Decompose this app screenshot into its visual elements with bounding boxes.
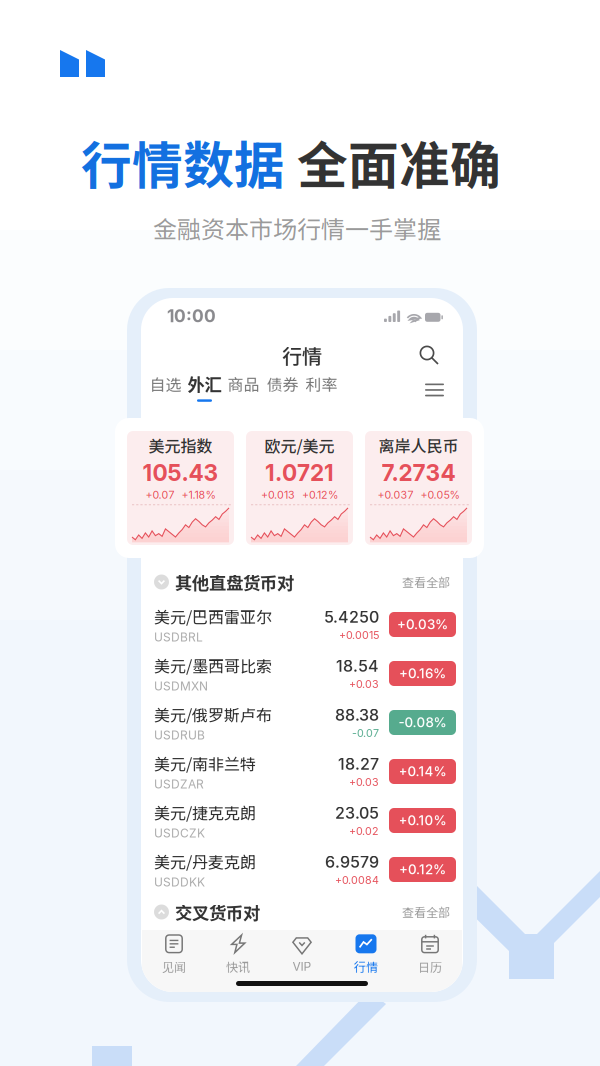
staticText: +0.013 [261, 488, 295, 501]
button[interactable]: 欧元/美元 [246, 431, 353, 545]
staticText: 美元/捷克克朗 [154, 801, 256, 824]
staticText: 6.9579 [325, 852, 379, 872]
staticText: 5.4250 [324, 607, 379, 627]
staticText: 查看全部 [402, 573, 450, 591]
staticText: +0.14% [398, 763, 446, 779]
staticText: 美元/俄罗斯卢布 [154, 703, 272, 726]
staticText: USDMXN [154, 679, 208, 693]
staticText: 美元/墨西哥比索 [154, 654, 272, 677]
staticText: 商品 [227, 372, 259, 395]
staticText: 其他直盘货币对 [175, 569, 294, 595]
button[interactable]: 见闻 [142, 932, 206, 976]
staticText: +0.037 [377, 488, 413, 501]
staticText: 88.38 [335, 705, 379, 725]
staticText: 行情 [354, 958, 378, 975]
button[interactable]: 美元/丹麦克朗 [141, 845, 463, 894]
staticText: 金融资本市场行情一手掌握 [153, 210, 441, 245]
staticText: 日历 [418, 958, 442, 975]
button[interactable]: 离岸人民币 [365, 431, 472, 545]
staticText: +0.0084 [335, 874, 379, 887]
button[interactable]: 美元/俄罗斯卢布 [141, 698, 463, 747]
staticText: 行情数据 [81, 125, 285, 198]
staticText: 23.05 [335, 803, 379, 823]
button[interactable]: 分类 [416, 374, 453, 405]
button[interactable]: 自选 [146, 374, 185, 406]
staticText: +0.07 [145, 488, 174, 501]
staticText: 美元/巴西雷亚尔 [154, 605, 272, 628]
staticText: 离岸人民币 [378, 434, 458, 457]
staticText: +0.03% [397, 616, 448, 632]
staticText: 7.2734 [381, 459, 455, 486]
button[interactable]: 其他直盘货币对 [141, 564, 463, 600]
button[interactable]: 行情 [334, 932, 398, 976]
staticText: -0.08% [398, 714, 446, 730]
staticText: 外汇 [187, 371, 221, 396]
staticText: 见闻 [162, 958, 186, 975]
button[interactable]: 债券 [263, 374, 302, 406]
staticText: +0.16% [399, 665, 446, 681]
staticText: 美元/南非兰特 [154, 752, 256, 775]
button[interactable]: 外汇 [185, 374, 224, 406]
button[interactable]: 美元指数 [127, 431, 234, 545]
staticText: USDDKK [154, 875, 205, 889]
staticText: +0.05% [420, 488, 459, 501]
button[interactable]: 美元/巴西雷亚尔 [141, 600, 463, 649]
staticText: +0.0015 [339, 629, 379, 642]
staticText: USDRUB [154, 728, 205, 742]
staticText: +0.10% [398, 812, 446, 828]
button[interactable]: 利率 [302, 374, 341, 406]
staticText: USDCZK [154, 826, 205, 840]
staticText: USDZAR [154, 777, 204, 791]
button[interactable]: 快讯 [206, 932, 270, 976]
staticText: VIP [292, 959, 311, 974]
button[interactable]: 美元/捷克克朗 [141, 796, 463, 845]
staticText: 欧元/美元 [264, 434, 334, 457]
button[interactable]: 日历 [398, 932, 462, 976]
staticText: 美元指数 [148, 434, 212, 457]
staticText: 自选 [149, 372, 181, 395]
staticText: 行情 [282, 340, 322, 369]
staticText: 查看全部 [402, 903, 450, 921]
staticText: 1.0721 [265, 459, 334, 486]
staticText: +0.02 [349, 825, 379, 838]
button[interactable]: VIP [270, 932, 334, 976]
staticText: 美元/丹麦克朗 [154, 850, 256, 873]
staticText: 全面准确 [285, 125, 501, 198]
staticText: 10:00 [167, 305, 216, 326]
staticText: 18.54 [336, 656, 379, 676]
button[interactable]: 搜索 [411, 339, 447, 371]
staticText: +0.12% [399, 861, 446, 877]
staticText: 利率 [305, 372, 337, 395]
button[interactable]: 商品 [224, 374, 263, 406]
staticText: 快讯 [226, 958, 250, 975]
button[interactable]: 美元/南非兰特 [141, 747, 463, 796]
button[interactable]: 美元/墨西哥比索 [141, 649, 463, 698]
staticText: 18.27 [338, 754, 379, 774]
staticText: +0.03 [349, 776, 379, 789]
staticText: 105.43 [142, 459, 218, 486]
staticText: 交叉货币对 [175, 899, 260, 925]
staticText: -0.07 [352, 727, 379, 740]
staticText: +0.03 [349, 678, 379, 691]
staticText: +0.12% [302, 488, 338, 501]
button[interactable]: 交叉货币对 [141, 894, 463, 930]
staticText: USDBRL [154, 630, 203, 644]
staticText: +1.18% [181, 488, 215, 501]
staticText: 债券 [266, 372, 298, 395]
